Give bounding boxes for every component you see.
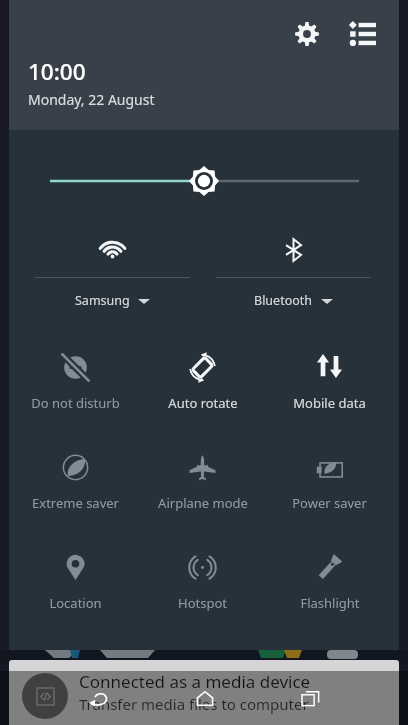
button[interactable]: Flashlight <box>266 522 393 622</box>
button[interactable]: Samsung <box>22 220 203 309</box>
staticText: 10:00 <box>28 56 86 87</box>
button[interactable]: Home <box>181 675 228 722</box>
staticText: Connected as a media device <box>79 670 311 693</box>
button[interactable]: Settings <box>284 11 329 56</box>
button[interactable]: Edit quick settings <box>340 11 385 56</box>
button[interactable]: Location <box>12 522 139 622</box>
staticText: Flashlight <box>300 594 360 612</box>
staticText: Location <box>49 594 102 612</box>
staticText: Samsung <box>75 292 130 309</box>
button[interactable]: Connected as a media device <box>9 660 399 725</box>
button[interactable]: Back <box>75 675 122 722</box>
staticText: Do not disturb <box>31 394 120 412</box>
button[interactable]: Brightness <box>9 152 399 210</box>
button[interactable]: Extreme saver <box>12 422 139 522</box>
staticText: Auto rotate <box>168 394 238 412</box>
staticText: Monday, 22 August <box>28 90 155 109</box>
staticText: Transfer media files to computer <box>79 694 309 714</box>
staticText: Bluetooth <box>254 292 313 309</box>
button[interactable]: Hotspot <box>139 522 266 622</box>
staticText: Mobile data <box>293 394 366 412</box>
button[interactable]: Auto rotate <box>139 322 266 422</box>
staticText: Extreme saver <box>32 494 119 512</box>
button[interactable]: Mobile data <box>266 322 393 422</box>
button[interactable]: Power saver <box>266 422 393 522</box>
button[interactable]: Recents <box>287 675 334 722</box>
staticText: Hotspot <box>178 594 227 612</box>
button[interactable]: Bluetooth <box>203 220 384 309</box>
button[interactable]: Airplane mode <box>139 422 266 522</box>
button[interactable]: Do not disturb <box>12 322 139 422</box>
staticText: Airplane mode <box>158 494 248 512</box>
staticText: Power saver <box>292 494 367 512</box>
